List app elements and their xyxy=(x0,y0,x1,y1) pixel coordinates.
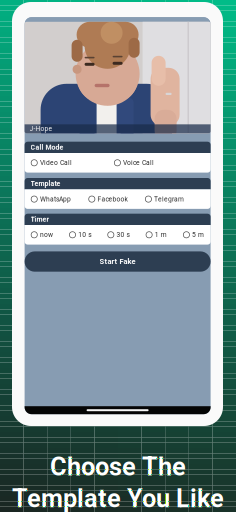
staticText: Call Mode xyxy=(31,143,64,151)
button[interactable]: WhatsApp xyxy=(31,195,71,203)
staticText: 5 m xyxy=(192,231,204,239)
staticText: J-Hope xyxy=(30,125,53,133)
button[interactable]: 10 s xyxy=(69,231,91,239)
staticText: 1 m xyxy=(155,231,167,239)
staticText: Template xyxy=(31,180,61,188)
staticText: Start Fake xyxy=(100,257,136,266)
button[interactable]: Video Call xyxy=(31,159,72,167)
staticText: Facebook xyxy=(97,195,127,203)
button[interactable]: Facebook xyxy=(89,195,127,203)
button[interactable]: 30 s xyxy=(108,231,129,239)
staticText: Template You Like xyxy=(12,484,224,512)
staticText: Voice Call xyxy=(123,159,154,167)
staticText: WhatsApp xyxy=(40,195,71,203)
staticText: now xyxy=(40,231,53,239)
staticText: 30 s xyxy=(116,231,129,239)
button[interactable]: Telegram xyxy=(145,195,184,203)
button[interactable]: Start Fake xyxy=(25,251,211,272)
button[interactable]: now xyxy=(31,231,53,239)
staticText: Timer xyxy=(31,215,50,223)
staticText: Choose The xyxy=(50,452,186,482)
staticText: Telegram xyxy=(154,195,184,203)
button[interactable]: 1 m xyxy=(146,231,167,239)
button[interactable]: 5 m xyxy=(183,231,204,239)
button[interactable]: Voice Call xyxy=(114,159,154,167)
staticText: Video Call xyxy=(40,159,72,167)
staticText: 10 s xyxy=(78,231,91,239)
